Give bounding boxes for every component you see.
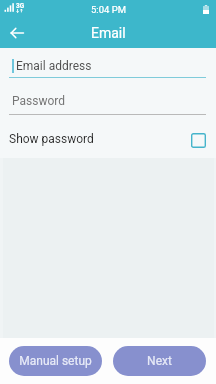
staticText: Manual setup (19, 354, 92, 368)
button[interactable]: Next (113, 346, 206, 376)
staticText: Email (91, 25, 126, 41)
button[interactable]: Manual setup (9, 346, 102, 376)
staticText: 3G (16, 2, 25, 10)
staticText: 5:04 PM (91, 4, 126, 15)
staticText: Next (147, 354, 172, 368)
staticText: Show password (9, 132, 94, 146)
button[interactable]: Back (2, 18, 32, 48)
staticText: Email address (16, 59, 92, 73)
staticText: Password (12, 94, 66, 108)
button[interactable]: Show password (0, 126, 216, 152)
